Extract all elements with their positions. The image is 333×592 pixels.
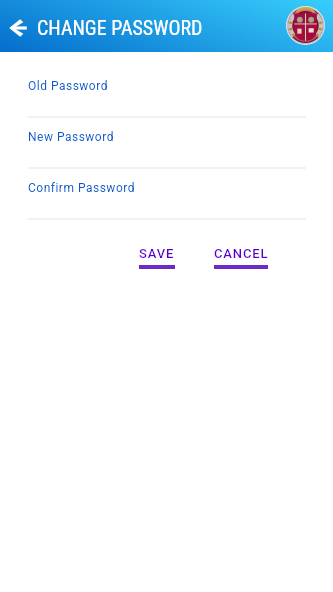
button[interactable]: CANCEL — [214, 246, 268, 269]
button[interactable]: Confirm Password — [28, 170, 306, 220]
button[interactable]: University logo — [286, 6, 325, 45]
staticText: CANCEL — [214, 246, 268, 261]
button[interactable]: New Password — [28, 119, 306, 169]
staticText: Old Password — [28, 79, 108, 93]
staticText: New Password — [28, 130, 114, 144]
button[interactable]: SAVE — [139, 246, 175, 269]
staticText: SAVE — [139, 246, 175, 261]
button[interactable]: Back — [4, 13, 32, 41]
staticText: CHANGE PASSWORD — [37, 16, 203, 39]
button[interactable]: Old Password — [28, 68, 306, 118]
staticText: Confirm Password — [28, 181, 135, 195]
